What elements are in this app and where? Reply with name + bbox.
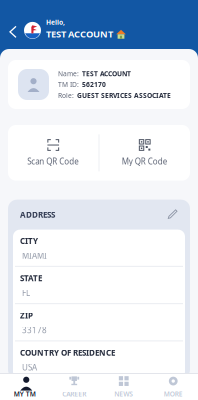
button[interactable]: Scan QR Code [8, 125, 98, 181]
staticText: MY TM [14, 390, 36, 398]
staticText: GUEST SERVICES ASSOCIATE [77, 91, 171, 100]
button[interactable]: Back [0, 19, 24, 42]
staticText: TEST ACCOUNT [46, 28, 113, 40]
staticText: 33178 [22, 325, 47, 335]
staticText: CITY [20, 236, 38, 246]
button[interactable]: NEWS [99, 374, 148, 400]
staticText: TM ID: [58, 80, 79, 89]
button[interactable]: MORE [148, 374, 198, 400]
staticText: ADDRESS [20, 209, 55, 220]
staticText: TEST ACCOUNT [82, 69, 131, 78]
staticText: MIAMI [22, 250, 47, 261]
staticText: My QR Code [122, 156, 168, 167]
staticText: COUNTRY OF RESIDENCE [20, 347, 115, 358]
staticText: NEWS [114, 390, 133, 398]
staticText: 562170 [82, 80, 106, 89]
staticText: Hello, [46, 18, 65, 27]
staticText: STATE [20, 273, 42, 283]
staticText: Role: [58, 91, 74, 100]
staticText: CAREER [62, 390, 86, 398]
button[interactable]: MY TM [0, 374, 49, 400]
staticText: Scan QR Code [27, 156, 79, 167]
button[interactable]: CAREER [49, 374, 99, 400]
button[interactable]: Edit address [161, 209, 179, 221]
staticText: FL [22, 287, 30, 298]
staticText: MORE [164, 390, 183, 398]
staticText: Name: [58, 69, 79, 78]
staticText: USA [22, 362, 37, 373]
staticText: ZIP [20, 310, 33, 321]
button[interactable]: My QR Code [99, 125, 190, 181]
